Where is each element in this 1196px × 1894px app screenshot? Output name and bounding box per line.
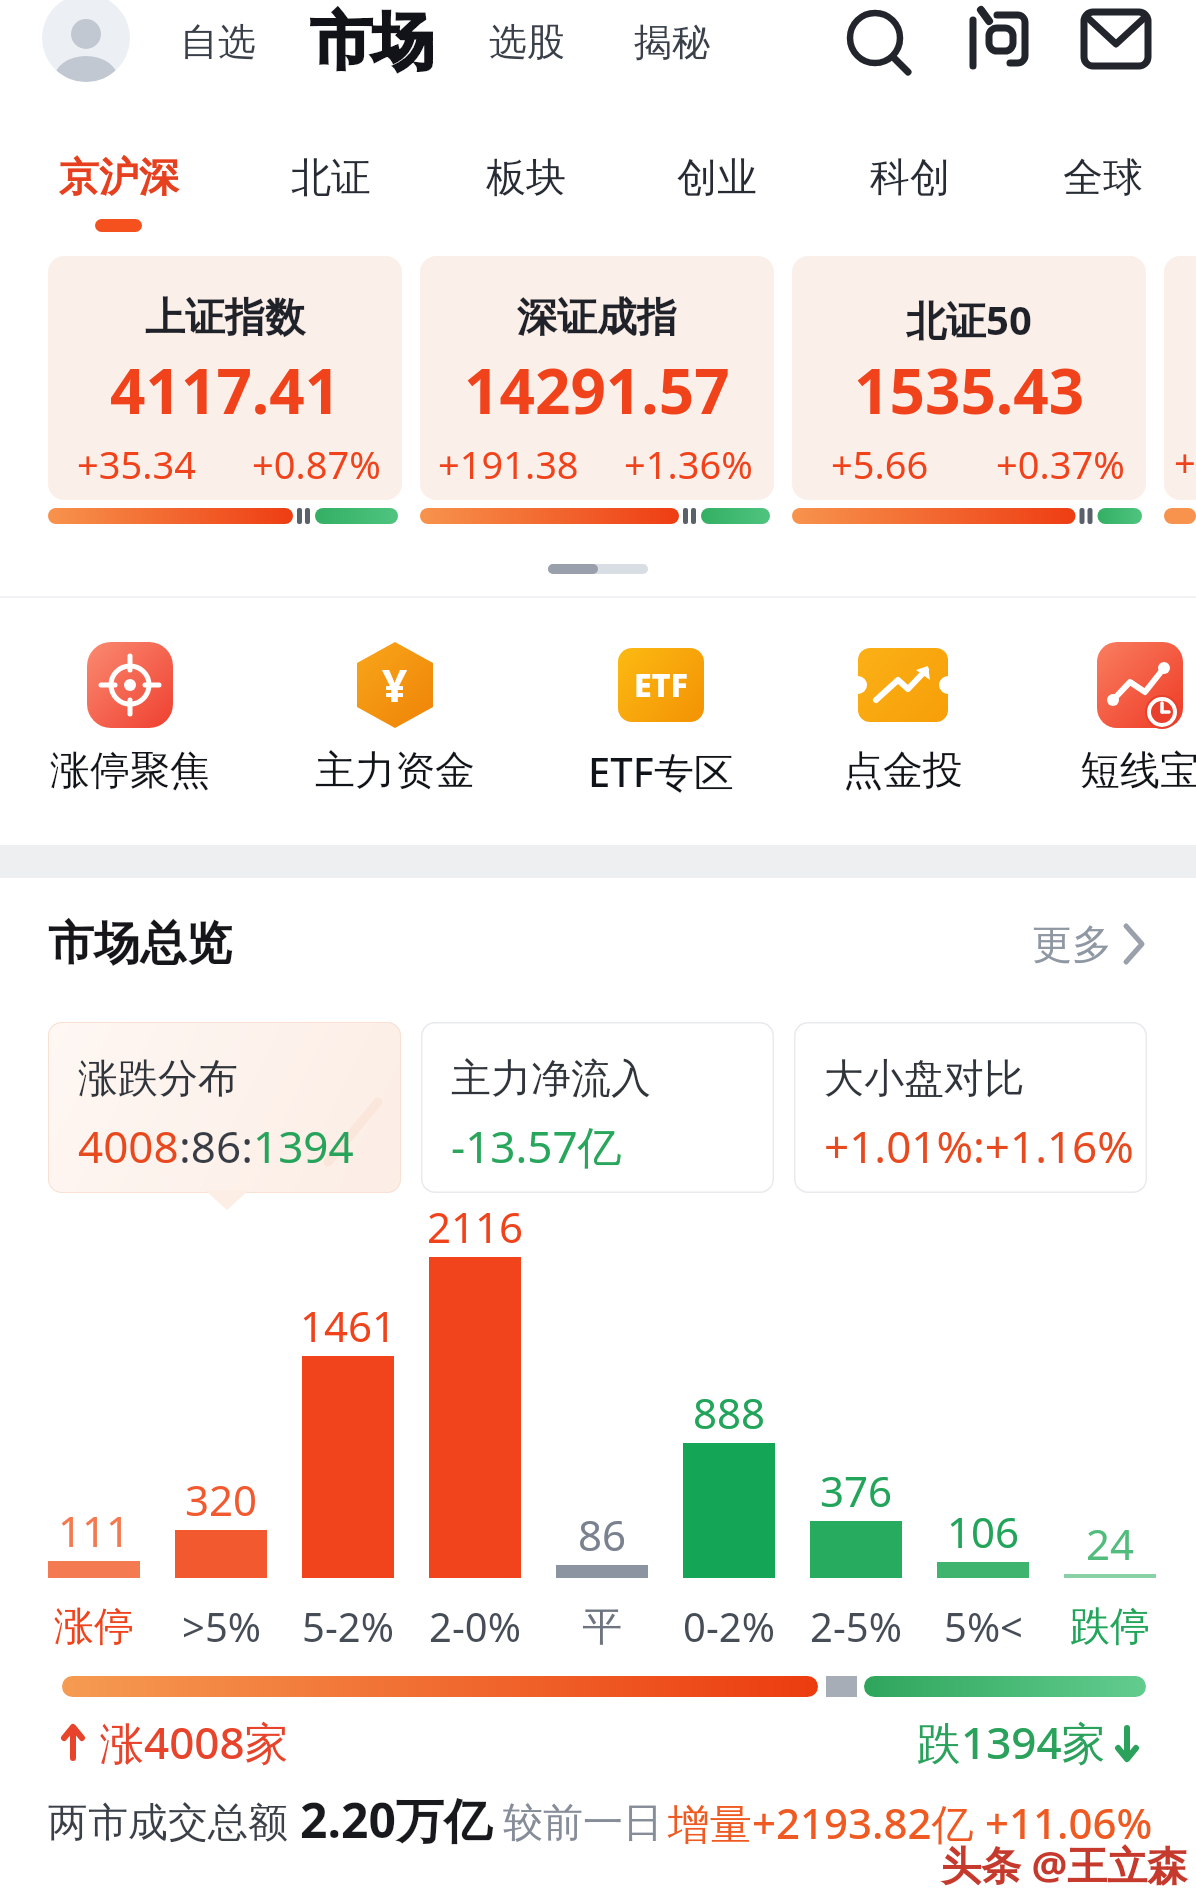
staticText: :86: (179, 1116, 253, 1176)
staticText: 北证50 (906, 292, 1032, 342)
staticText: +1 (1174, 436, 1196, 488)
button[interactable]: 上证指数 (48, 256, 402, 500)
staticText: 全球 (1063, 152, 1143, 202)
button[interactable]: ETF (556, 636, 766, 796)
staticText: +35.34 (77, 438, 196, 488)
staticText: 2-0% (429, 1599, 521, 1653)
staticText: 市场总览 (48, 915, 232, 973)
staticText: +1.36% (624, 438, 753, 488)
staticText: +0.87% (252, 438, 381, 488)
staticText: 14291.57 (464, 348, 730, 428)
button[interactable]: 揭秘 (624, 10, 720, 74)
staticText: 2116 (427, 1198, 524, 1255)
staticText: ¥ (382, 655, 408, 715)
staticText: 106 (947, 1503, 1020, 1560)
button[interactable]: 全球 (1053, 146, 1153, 208)
staticText: 5%< (944, 1599, 1023, 1653)
button[interactable]: 深证成指 (420, 256, 774, 500)
button[interactable] (958, 0, 1038, 80)
staticText: 24 (1086, 1515, 1135, 1572)
button[interactable]: 主力净流入 (421, 1022, 774, 1193)
staticText: 86 (578, 1506, 627, 1563)
button[interactable]: 北证 (281, 146, 381, 208)
staticText: 涨4008家 (100, 1712, 289, 1772)
staticText: 科创 (870, 152, 950, 202)
staticText: +191.38 (438, 438, 579, 488)
staticText: 888 (693, 1384, 766, 1441)
staticText: 主力资金 (315, 745, 475, 795)
staticText: 0-2% (683, 1599, 775, 1653)
staticText: 2.20万亿 (300, 1787, 492, 1853)
staticText: 1461 (300, 1297, 397, 1354)
staticText: 较前一日 (503, 1797, 663, 1847)
button[interactable]: 自选 (170, 10, 266, 74)
staticText: +0.37% (996, 438, 1125, 488)
staticText: 头条 @王立森 (941, 1837, 1188, 1892)
button[interactable]: 点金投 (798, 636, 1008, 796)
staticText: -13.57亿 (451, 1116, 622, 1176)
staticText: 1394 (253, 1116, 354, 1176)
staticText: 主力净流入 (451, 1053, 651, 1103)
staticText: 京沪深 (59, 152, 179, 202)
staticText: 创业 (677, 152, 757, 202)
staticText: 更多 (1032, 919, 1112, 969)
staticText: 平 (582, 1601, 622, 1651)
staticText: ETF专区 (588, 744, 734, 796)
button[interactable]: 涨停聚焦 (25, 636, 235, 796)
staticText: 增量+2193.82亿 (668, 1794, 974, 1851)
staticText: 上证指数 (145, 292, 305, 342)
staticText: 市场 (310, 3, 434, 81)
staticText: 板块 (486, 152, 566, 202)
button[interactable]: 大小盘对比 (794, 1022, 1147, 1193)
button[interactable]: 短线宝 (1035, 636, 1196, 796)
button[interactable] (1076, 0, 1156, 80)
staticText: ETF (634, 663, 688, 707)
button[interactable]: 选股 (479, 10, 575, 74)
staticText: +5.66 (831, 438, 929, 488)
button[interactable]: 科创 (860, 146, 960, 208)
staticText: +1.01%:+1.16% (824, 1116, 1134, 1176)
staticText: +11.06% (985, 1794, 1153, 1851)
staticText: 涨停 (54, 1601, 134, 1651)
staticText: 涨跌分布 (78, 1053, 238, 1103)
button[interactable]: 涨跌分布 (48, 1022, 401, 1193)
button[interactable]: 创业 (667, 146, 767, 208)
staticText: 选股 (489, 18, 565, 66)
staticText: >5% (182, 1599, 261, 1653)
staticText: 点金投 (843, 745, 963, 795)
staticText: 2-5% (810, 1599, 902, 1653)
button[interactable]: 更多 (1032, 914, 1152, 974)
button[interactable] (42, 0, 130, 82)
button[interactable] (838, 0, 918, 80)
staticText: 北证 (291, 152, 371, 202)
staticText: 大小盘对比 (824, 1053, 1024, 1103)
button[interactable]: 板块 (476, 146, 576, 208)
staticText: 320 (185, 1471, 258, 1528)
staticText: 4008 (78, 1116, 179, 1176)
staticText: 跌1394家 (917, 1712, 1106, 1772)
staticText: 揭秘 (634, 18, 710, 66)
staticText: 自选 (180, 18, 256, 66)
staticText: 涨停聚焦 (50, 745, 210, 795)
staticText: 1535.43 (854, 348, 1085, 428)
button[interactable]: 京沪深 (44, 146, 194, 208)
staticText: 跌停 (1070, 1601, 1150, 1651)
staticText: 376 (820, 1462, 893, 1519)
button[interactable]: 北证50 (792, 256, 1146, 500)
staticText: 111 (58, 1502, 131, 1559)
staticText: 两市成交总额 (48, 1797, 288, 1847)
staticText: 深证成指 (517, 292, 677, 342)
staticText: 5-2% (302, 1599, 394, 1653)
button[interactable]: ¥ (290, 636, 500, 796)
button[interactable]: 市场 (296, 2, 448, 82)
staticText: 4117.41 (110, 348, 341, 428)
staticText: 短线宝 (1080, 745, 1196, 795)
